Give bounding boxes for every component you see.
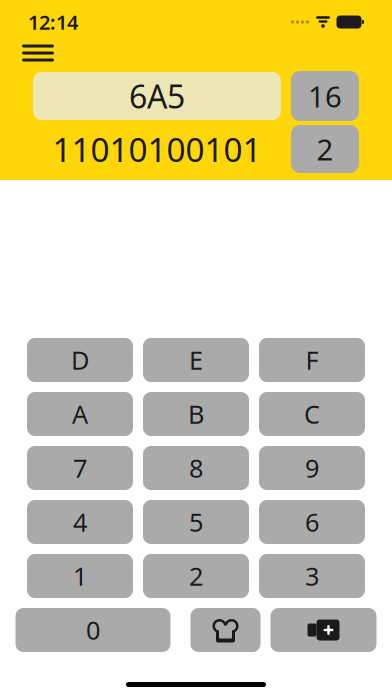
button[interactable]: 6A5 — [33, 72, 281, 120]
button[interactable]: 16 — [291, 71, 359, 121]
staticText: 3 — [305, 559, 319, 593]
staticText: 8 — [189, 451, 203, 485]
staticText: B — [188, 397, 204, 431]
button[interactable]: Menu — [14, 38, 62, 67]
button[interactable]: Favorite — [190, 608, 260, 652]
button[interactable]: 1 — [27, 554, 133, 598]
staticText: 6 — [305, 505, 319, 539]
button[interactable]: 8 — [143, 446, 249, 490]
staticText: 7 — [73, 451, 87, 485]
staticText: 2 — [189, 559, 203, 593]
staticText: 5 — [189, 505, 203, 539]
staticText: 2 — [316, 129, 333, 168]
button[interactable]: 2 — [143, 554, 249, 598]
staticText: C — [304, 397, 320, 431]
button[interactable]: E — [143, 338, 249, 382]
button[interactable]: Delete — [270, 608, 376, 652]
staticText: 11010100101 — [52, 127, 261, 171]
button[interactable]: B — [143, 392, 249, 436]
button[interactable]: 6 — [259, 500, 365, 544]
button[interactable]: 7 — [27, 446, 133, 490]
staticText: 6A5 — [129, 75, 185, 117]
staticText: 16 — [308, 76, 342, 115]
staticText: 4 — [73, 505, 87, 539]
button[interactable]: 5 — [143, 500, 249, 544]
staticText: A — [72, 397, 88, 431]
staticText: D — [71, 343, 89, 377]
staticText: E — [189, 343, 203, 377]
button[interactable]: 0 — [15, 608, 170, 652]
button[interactable]: 2 — [291, 125, 359, 173]
staticText: 12:14 — [28, 9, 78, 35]
staticText: 9 — [305, 451, 319, 485]
button[interactable]: 3 — [259, 554, 365, 598]
button[interactable]: 9 — [259, 446, 365, 490]
staticText: 0 — [86, 613, 100, 647]
button[interactable]: C — [259, 392, 365, 436]
button[interactable]: F — [259, 338, 365, 382]
staticText: F — [305, 343, 318, 377]
staticText: 1 — [73, 559, 87, 593]
button[interactable]: 4 — [27, 500, 133, 544]
button[interactable]: D — [27, 338, 133, 382]
button[interactable]: A — [27, 392, 133, 436]
